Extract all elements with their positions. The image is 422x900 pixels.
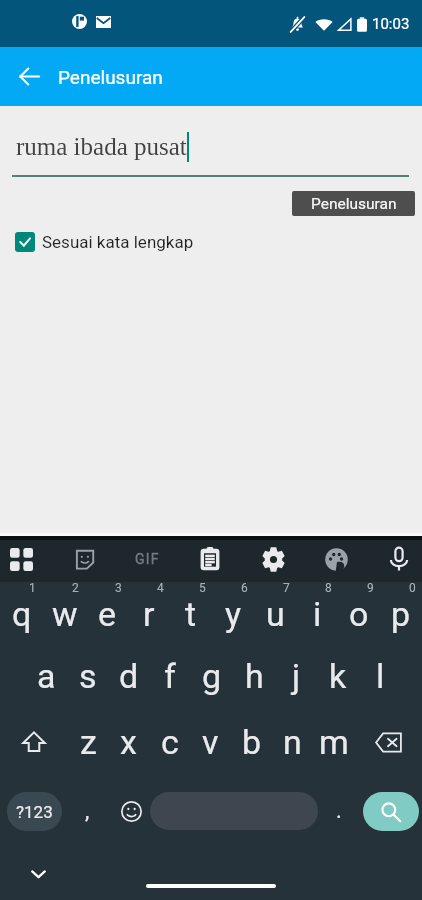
staticText: u (266, 594, 285, 634)
staticText: z (80, 722, 97, 762)
staticText: Sesuai kata lengkap (42, 232, 194, 252)
button[interactable]: 6 (212, 580, 254, 640)
button[interactable]: g (191, 646, 233, 706)
button[interactable]: Apps (0, 536, 42, 582)
button[interactable]: Backspace (354, 712, 422, 772)
button[interactable]: Emoji (112, 781, 150, 841)
button[interactable]: z (68, 712, 108, 772)
staticText: 9 (367, 581, 374, 595)
button[interactable]: b (231, 712, 272, 772)
staticText: x (120, 722, 137, 762)
button[interactable]: Stickers (63, 536, 105, 582)
staticText: c (161, 722, 179, 762)
button[interactable]: d (108, 646, 149, 706)
staticText: y (225, 594, 242, 634)
button[interactable]: n (272, 712, 313, 772)
button[interactable]: . (318, 781, 359, 841)
button[interactable]: a (26, 646, 67, 706)
button[interactable]: c (149, 712, 190, 772)
staticText: 4 (157, 581, 164, 595)
staticText: ruma ibada pusat (16, 133, 187, 161)
button[interactable]: 3 (86, 580, 128, 640)
button[interactable]: j (275, 646, 317, 706)
staticText: ?123 (16, 802, 53, 822)
staticText: j (292, 656, 301, 696)
button[interactable]: 0 (380, 580, 422, 640)
button[interactable]: ?123 (7, 792, 62, 831)
button[interactable]: Search (359, 781, 422, 841)
button[interactable]: Sesuai kata lengkap (15, 232, 194, 252)
staticText: r (143, 594, 155, 634)
staticText: 2 (72, 581, 79, 595)
button[interactable]: 4 (128, 580, 170, 640)
staticText: 0 (409, 581, 416, 595)
button[interactable]: GIF (126, 536, 168, 582)
button[interactable]: 5 (170, 580, 212, 640)
button[interactable]: Clipboard (189, 536, 231, 582)
button[interactable]: h (233, 646, 275, 706)
button[interactable]: f (149, 646, 191, 706)
staticText: i (313, 594, 322, 634)
button[interactable]: Shift (0, 712, 68, 772)
button[interactable]: Settings (252, 536, 294, 582)
staticText: w (52, 594, 78, 634)
button[interactable]: l (359, 646, 401, 706)
button[interactable]: Space (150, 792, 318, 830)
staticText: o (349, 594, 369, 634)
staticText: GIF (135, 551, 160, 567)
staticText: a (37, 656, 56, 696)
staticText: h (245, 656, 264, 696)
staticText: 5 (199, 581, 206, 595)
staticText: Penelusuran (311, 195, 397, 213)
staticText: 6 (241, 581, 248, 595)
staticText: k (329, 656, 347, 696)
staticText: Penelusuran (58, 66, 163, 88)
button[interactable]: Theme (315, 536, 357, 582)
staticText: p (391, 594, 411, 634)
staticText: q (12, 594, 32, 634)
button[interactable]: x (108, 712, 149, 772)
button[interactable]: 9 (338, 580, 380, 640)
staticText: n (283, 722, 302, 762)
staticText: f (164, 656, 176, 696)
staticText: . (336, 798, 342, 824)
staticText: , (85, 798, 90, 824)
button[interactable]: Hide keyboard (24, 860, 52, 888)
button[interactable]: k (317, 646, 359, 706)
button[interactable]: v (190, 712, 231, 772)
button[interactable]: , (62, 781, 112, 841)
button[interactable]: Penelusuran (292, 191, 415, 216)
button[interactable]: Voice input (378, 536, 420, 582)
staticText: 10:03 (372, 15, 410, 33)
button[interactable]: 7 (254, 580, 296, 640)
staticText: 1 (29, 581, 36, 595)
staticText: b (242, 722, 262, 762)
button[interactable]: s (67, 646, 108, 706)
staticText: m (319, 722, 349, 762)
staticText: 3 (115, 581, 122, 595)
button[interactable]: Back (0, 47, 58, 106)
staticText: t (185, 594, 197, 634)
staticText: d (119, 656, 139, 696)
button[interactable]: 8 (296, 580, 338, 640)
staticText: 7 (283, 581, 290, 595)
staticText: g (202, 656, 222, 696)
staticText: e (98, 594, 117, 634)
staticText: s (79, 656, 97, 696)
button[interactable]: m (313, 712, 354, 772)
staticText: v (202, 722, 219, 762)
button[interactable]: 2 (43, 580, 86, 640)
button[interactable]: 1 (0, 580, 43, 640)
staticText: l (376, 656, 385, 696)
staticText: 8 (325, 581, 332, 595)
